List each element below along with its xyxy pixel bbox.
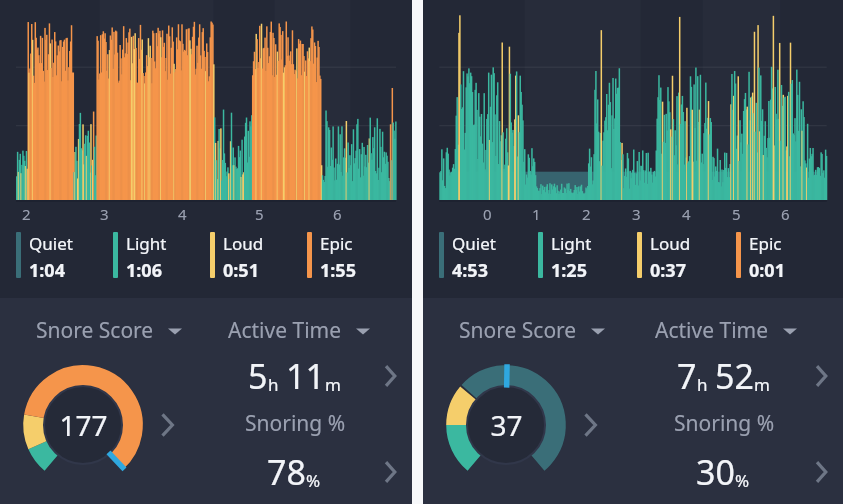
staticText: Light [551, 232, 592, 255]
staticText: 7 [677, 353, 697, 399]
staticText: Epic [749, 232, 782, 255]
button[interactable]: Light [113, 232, 210, 283]
staticText: Loud [650, 232, 691, 255]
staticText: 2 [22, 204, 31, 224]
staticText: Snore Score [36, 316, 154, 345]
other: Expand Snore Score [168, 326, 182, 336]
staticText: 6 [781, 204, 790, 224]
other: Expand Snore Score [591, 326, 605, 336]
button[interactable]: Snore Score [459, 316, 633, 345]
staticText: Epic [320, 232, 353, 255]
staticText: 3 [632, 204, 641, 224]
button[interactable]: Loud [637, 232, 736, 283]
button[interactable]: 30 [633, 445, 843, 498]
staticText: 1 [532, 204, 541, 224]
button[interactable]: 78 [206, 445, 412, 498]
staticText: 11 [286, 353, 325, 399]
button[interactable]: Snore Score [36, 316, 206, 345]
staticText: 3 [100, 204, 109, 224]
staticText: 4 [178, 204, 187, 224]
button[interactable]: Light [538, 232, 637, 283]
staticText: 30 [696, 449, 735, 495]
button[interactable]: 37 [423, 345, 633, 504]
button[interactable]: Active Time [228, 316, 412, 345]
button[interactable]: Active Time [655, 316, 843, 345]
staticText: m [325, 373, 341, 396]
staticText: % [735, 469, 750, 492]
staticText: 4 [682, 204, 691, 224]
staticText: 5 [732, 204, 741, 224]
staticText: 5 [248, 353, 268, 399]
button[interactable]: 177 [0, 345, 206, 504]
button[interactable]: Loud [210, 232, 307, 283]
staticText: 37 [490, 406, 523, 444]
staticText: 1:06 [126, 258, 162, 283]
staticText: Active Time [228, 316, 342, 345]
button[interactable]: 5 [206, 349, 412, 402]
staticText: Active Time [655, 316, 769, 345]
staticText: Loud [223, 232, 264, 255]
staticText: 0:01 [749, 258, 785, 283]
staticText: 52 [715, 353, 754, 399]
staticText: Snoring % [674, 409, 775, 438]
button[interactable]: Epic [736, 232, 835, 283]
staticText: Quiet [29, 232, 73, 255]
staticText: 1:04 [29, 258, 65, 283]
staticText: 4:53 [452, 258, 488, 283]
other: Expand Active Time [783, 326, 797, 336]
other: Expand Active Time [356, 326, 370, 336]
staticText: Snore Score [459, 316, 577, 345]
staticText: 5 [255, 204, 264, 224]
staticText: 1:25 [551, 258, 587, 283]
staticText: 0:51 [223, 258, 259, 283]
staticText: m [754, 373, 770, 396]
staticText: h [268, 373, 279, 396]
button[interactable]: Epic [307, 232, 404, 283]
staticText: 6 [333, 204, 342, 224]
staticText: 0 [483, 204, 492, 224]
staticText: 177 [59, 406, 108, 444]
button[interactable]: Quiet [439, 232, 538, 283]
staticText: Snoring % [245, 409, 346, 438]
button[interactable]: Quiet [16, 232, 113, 283]
button[interactable]: 7 [633, 349, 843, 402]
staticText: 0:37 [650, 258, 686, 283]
staticText: % [306, 469, 321, 492]
staticText: Light [126, 232, 167, 255]
staticText: 1:55 [320, 258, 356, 283]
staticText: h [697, 373, 708, 396]
staticText: 78 [267, 449, 306, 495]
staticText: Quiet [452, 232, 496, 255]
staticText: 2 [582, 204, 591, 224]
